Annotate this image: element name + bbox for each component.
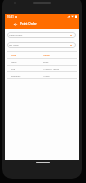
staticText: Remarks (11, 75, 43, 78)
staticText: 9000 (43, 61, 49, 64)
button[interactable]: Back (11, 19, 19, 29)
staticText: Tgl Login (9, 44, 19, 47)
button[interactable]: Nama Client (7, 32, 76, 38)
staticText: Sub (11, 68, 43, 71)
staticText: Type (11, 54, 43, 57)
staticText: 12000 (43, 75, 50, 78)
staticText: Harga (43, 54, 50, 57)
staticText: 10:31 (7, 15, 14, 19)
staticText: Nama Client (9, 34, 23, 37)
staticText: Merk (11, 61, 43, 64)
staticText: Point Order (20, 22, 37, 26)
button[interactable]: Tgl Login (7, 42, 76, 48)
staticText: 17000/h 18000 (43, 68, 60, 71)
